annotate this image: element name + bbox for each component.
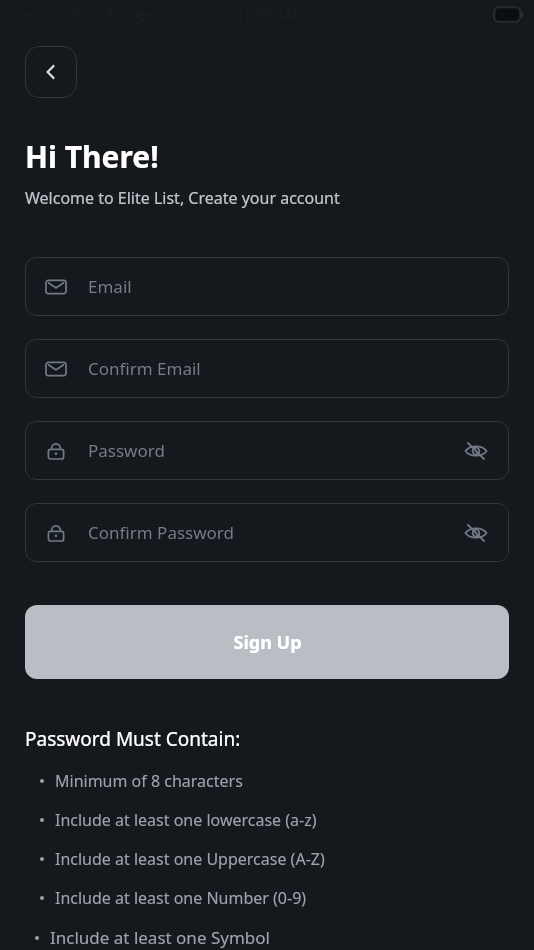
- staticText: Sign Up: [233, 630, 302, 655]
- staticText: Include at least one lowercase (a-z): [55, 809, 317, 831]
- staticText: Confirm Email: [88, 357, 201, 380]
- button[interactable]: Confirm Email: [25, 339, 509, 398]
- button[interactable]: Back: [25, 46, 77, 98]
- button[interactable]: Show password: [463, 438, 489, 464]
- button[interactable]: Email: [25, 257, 509, 316]
- staticText: Password Must Contain:: [25, 726, 241, 752]
- staticText: Include at least one Symbol: [50, 926, 270, 949]
- staticText: Minimum of 8 characters: [55, 770, 243, 792]
- staticText: Confirm Password: [88, 521, 234, 544]
- staticText: Password: [88, 439, 165, 462]
- staticText: Include at least one Number (0-9): [55, 887, 307, 909]
- button[interactable]: Password: [25, 421, 509, 480]
- staticText: Include at least one Uppercase (A-Z): [55, 848, 325, 870]
- button[interactable]: Confirm Password: [25, 503, 509, 562]
- button[interactable]: Sign Up: [25, 605, 509, 679]
- staticText: Email: [88, 275, 132, 298]
- staticText: Hi There!: [25, 136, 159, 177]
- button[interactable]: Show password: [463, 520, 489, 546]
- staticText: Welcome to Elite List, Create your accou…: [25, 187, 340, 209]
